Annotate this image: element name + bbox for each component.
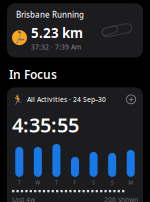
staticText: + [128,93,133,106]
staticText: M [128,179,133,186]
staticText: F [73,179,76,186]
staticText: 🏃 [13,32,26,44]
staticText: 🏃 [12,94,24,105]
staticText: All Activities · 24 Sep–30 [27,95,106,104]
staticText: 5.23 km [31,24,83,42]
staticText: 206 shown [104,195,138,202]
staticText: T [18,179,21,186]
button[interactable]: Brisbane Running [7,3,143,57]
staticText: W [35,179,40,186]
staticText: T [55,179,58,186]
staticText: 37:32 · 7:39 Am [31,43,81,51]
staticText: S [111,179,114,186]
staticText: Last 4w [12,195,35,202]
button[interactable]: Add [124,92,138,106]
staticText: S [92,179,95,186]
staticText: Brisbane Running [16,9,84,20]
staticText: 4:35:55 [12,111,79,138]
staticText: In Focus [9,66,57,82]
